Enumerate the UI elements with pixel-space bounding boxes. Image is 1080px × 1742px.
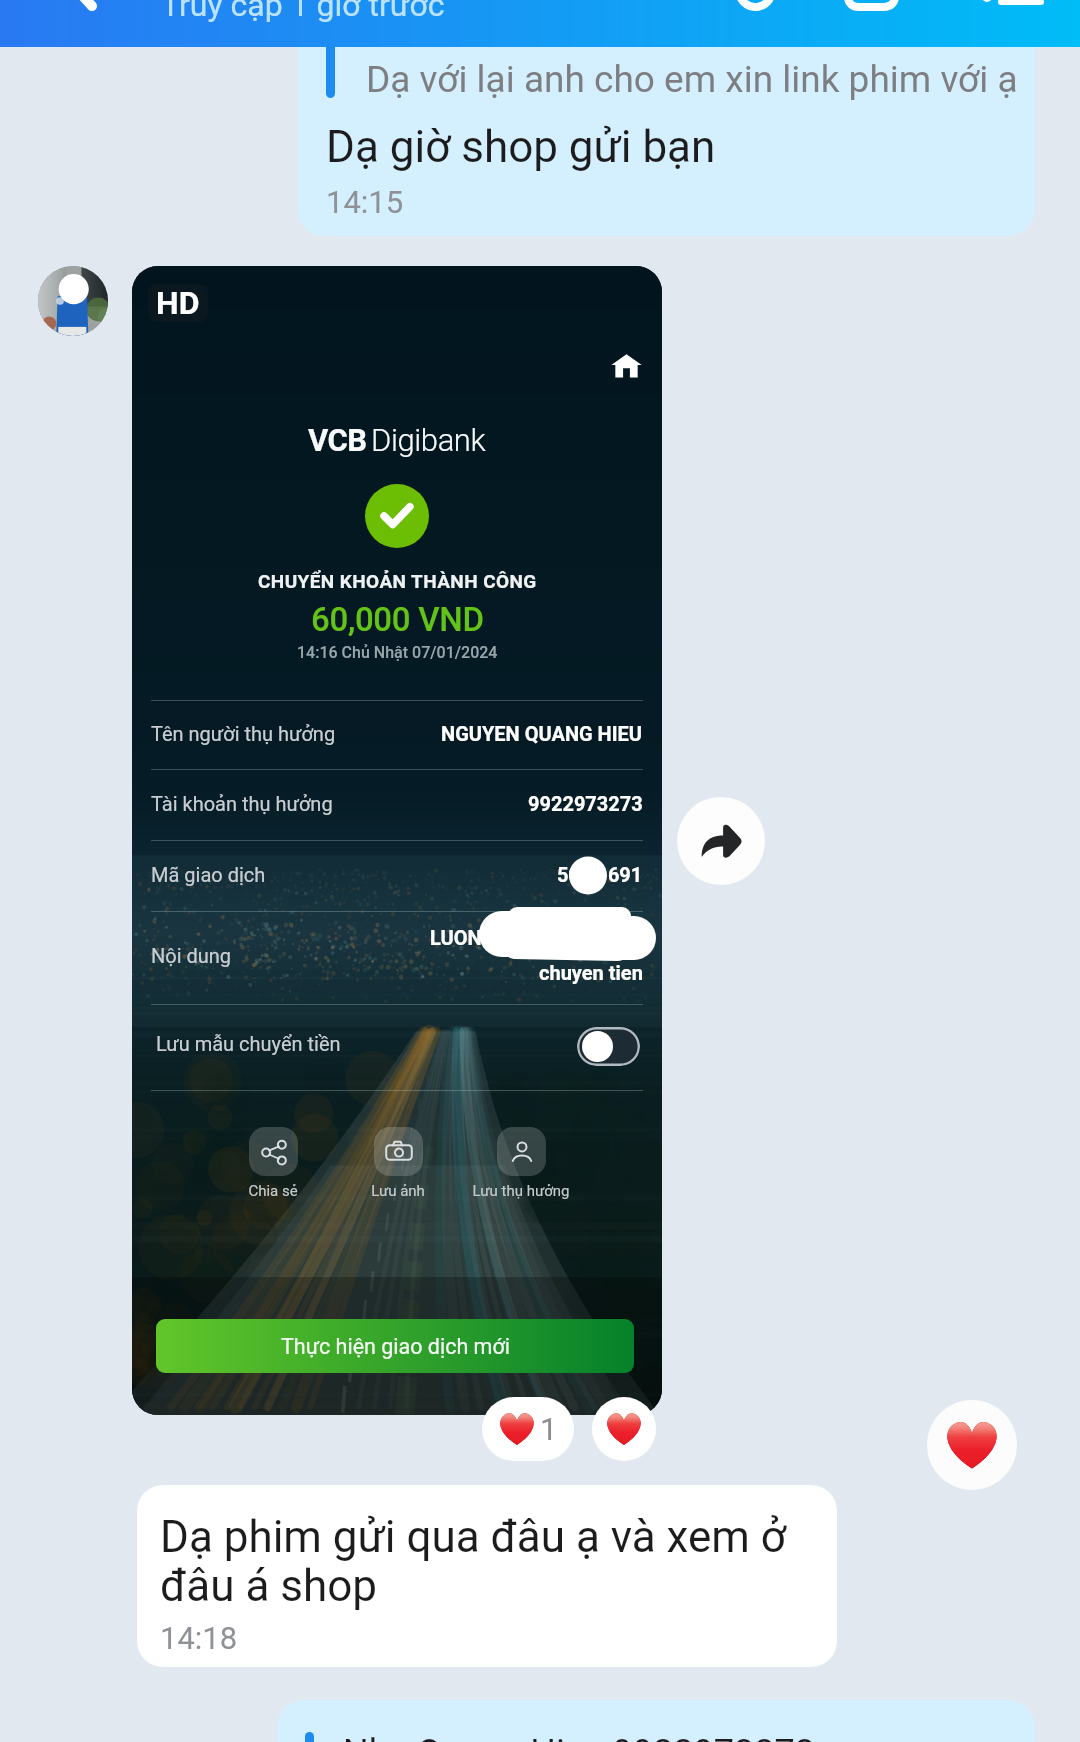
staticText: NGUYEN QUANG HIEU: [441, 722, 643, 745]
staticText: Digibank: [371, 422, 486, 458]
staticText: VCB: [308, 422, 367, 458]
staticText: Chia sẻ: [183, 1182, 363, 1200]
button[interactable]: Nha Quang Hieu 9922973273: [277, 1700, 1035, 1742]
button[interactable]: Home: [596, 335, 656, 395]
button[interactable]: Forward: [677, 797, 765, 885]
staticText: 14:18: [160, 1620, 238, 1656]
staticText: Truy cập 1 giờ trước: [161, 0, 445, 24]
staticText: 14:15: [326, 184, 404, 220]
button[interactable]: Thực hiện giao dịch mới: [156, 1319, 634, 1373]
button[interactable]: Save transfer template: [577, 1027, 640, 1066]
staticText: Dạ phim gửi qua đâu ạ và xem ở đâu á sho…: [160, 1511, 786, 1612]
staticText: CHUYỂN KHOẢN THÀNH CÔNG: [258, 570, 537, 592]
staticText: Tên người thụ hưởng: [151, 722, 336, 745]
staticText: HD: [156, 284, 200, 322]
staticText: Mã giao dịch: [151, 863, 266, 886]
button[interactable]: 1: [482, 1397, 574, 1461]
staticText: 1: [540, 1411, 558, 1447]
staticText: Nội dung: [151, 944, 232, 967]
button[interactable]: Dạ phim gửi qua đâu ạ và xem ở đâu á sho…: [137, 1485, 837, 1667]
button[interactable]: Dạ với lại anh cho em xin link phim với …: [298, 0, 1035, 236]
button[interactable]: HD: [132, 266, 662, 1415]
button[interactable]: Lưu ảnh: [308, 1127, 488, 1200]
staticText: LUON: [430, 926, 482, 949]
staticText: Dạ với lại anh cho em xin link phim với …: [366, 58, 1018, 101]
staticText: Dạ giờ shop gửi bạn: [326, 121, 716, 173]
staticText: Nha Quang Hieu 9922973273: [343, 1732, 815, 1742]
staticText: chuyen tien: [539, 961, 643, 984]
staticText: Lưu thụ hưởng: [431, 1182, 611, 1200]
staticText: Thực hiện giao dịch mới: [281, 1334, 510, 1359]
staticText: 5013 691: [557, 863, 643, 886]
staticText: Lưu ảnh: [308, 1182, 488, 1200]
staticText: 9922973273: [528, 792, 643, 815]
staticText: Lưu mẫu chuyển tiền: [156, 1032, 341, 1055]
button[interactable]: Profile photo: [38, 266, 108, 336]
button[interactable]: Lưu thụ hưởng: [431, 1127, 611, 1200]
staticText: 60,000 VND: [311, 600, 484, 639]
button[interactable]: Chia sẻ: [183, 1127, 363, 1200]
staticText: 14:16 Chủ Nhật 07/01/2024: [297, 643, 498, 662]
staticText: Tài khoản thụ hưởng: [151, 792, 333, 815]
button[interactable]: Love reaction: [927, 1400, 1017, 1490]
button[interactable]: Love reaction: [592, 1397, 656, 1461]
